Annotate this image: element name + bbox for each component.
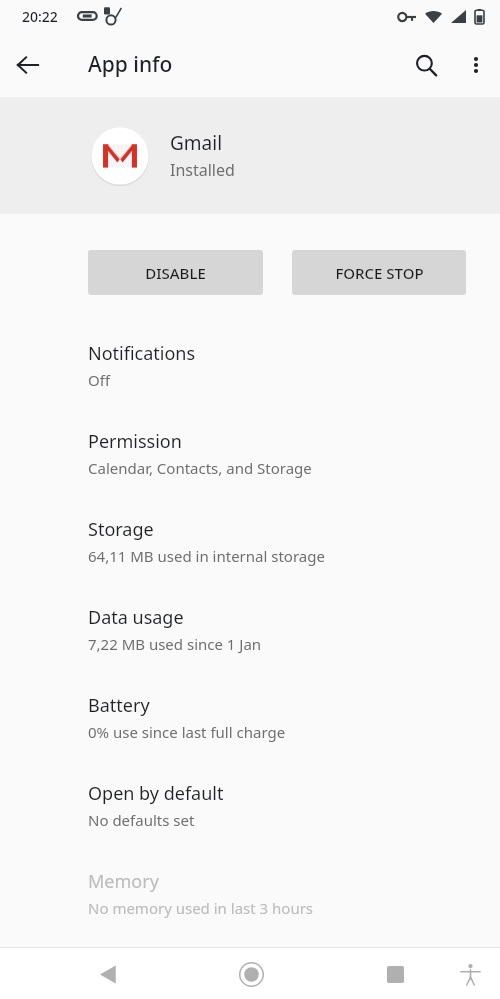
staticText: Battery (88, 693, 150, 718)
staticText: Permission (88, 429, 182, 454)
button[interactable]: FORCE STOP (292, 250, 466, 295)
staticText: Off (88, 370, 111, 390)
button[interactable]: DISABLE (88, 250, 263, 295)
staticText: 7,22 MB used since 1 Jan (88, 634, 262, 654)
staticText: DISABLE (145, 263, 206, 283)
button[interactable]: Battery (0, 683, 500, 771)
staticText: Storage (88, 517, 154, 542)
button[interactable]: Open by default (0, 771, 500, 859)
button[interactable]: Home (227, 950, 275, 998)
staticText: Memory (88, 869, 159, 894)
button[interactable]: Memory (0, 859, 500, 947)
staticText: Gmail (170, 130, 223, 156)
staticText: Data usage (88, 605, 184, 630)
button[interactable]: Gmail (0, 97, 500, 214)
button[interactable]: Data usage (0, 595, 500, 683)
staticText: 20:22 (22, 7, 58, 26)
staticText: 64,11 MB used in internal storage (88, 546, 325, 566)
staticText: Installed (170, 159, 235, 181)
staticText: App info (88, 50, 173, 79)
button[interactable]: Notifications (0, 331, 500, 419)
button[interactable]: Recent apps (371, 950, 419, 998)
staticText: No defaults set (88, 810, 195, 830)
staticText: No memory used in last 3 hours (88, 898, 314, 918)
staticText: Calendar, Contacts, and Storage (88, 458, 312, 478)
staticText: 0% use since last full charge (88, 722, 286, 742)
staticText: FORCE STOP (335, 263, 424, 283)
staticText: Open by default (88, 781, 224, 806)
button[interactable]: Back (84, 950, 132, 998)
button[interactable]: Storage (0, 507, 500, 595)
button[interactable]: More options (452, 41, 500, 89)
button[interactable]: Back (0, 37, 56, 93)
button[interactable]: Accessibility (446, 950, 494, 998)
button[interactable]: Search (400, 39, 452, 91)
staticText: Notifications (88, 341, 196, 366)
button[interactable]: Permission (0, 419, 500, 507)
